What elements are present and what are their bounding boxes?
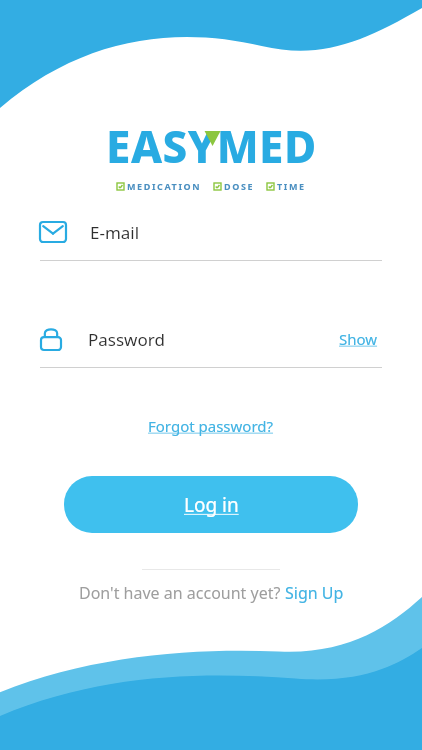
button[interactable]: Forgot password?	[142, 410, 280, 442]
other: Password	[40, 327, 62, 351]
staticText: Forgot password?	[148, 416, 274, 436]
staticText: Show	[339, 329, 378, 349]
staticText: Log in	[184, 492, 239, 518]
staticText: DOSE	[224, 180, 255, 192]
staticText: Password	[88, 328, 165, 351]
button[interactable]: Log in	[64, 476, 358, 533]
staticText: TIME	[277, 180, 306, 192]
button[interactable]: Show	[335, 325, 382, 353]
staticText: Don't have an account yet?	[79, 582, 285, 604]
button[interactable]: Email	[40, 212, 382, 261]
other: Email	[40, 222, 66, 242]
staticText: MEDICATION	[127, 180, 202, 192]
staticText: EASYMED	[106, 116, 317, 176]
staticText: Sign Up	[285, 582, 344, 604]
button[interactable]: Password	[40, 327, 335, 351]
staticText: E-mail	[90, 221, 140, 244]
button[interactable]: Sign Up	[285, 582, 344, 604]
